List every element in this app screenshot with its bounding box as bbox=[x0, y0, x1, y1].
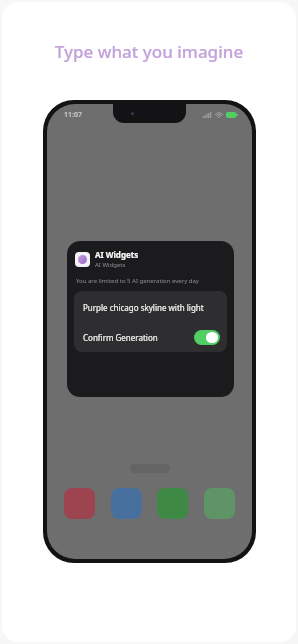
button[interactable]: Blue app bbox=[111, 488, 142, 519]
button[interactable]: Green app bbox=[157, 488, 188, 519]
staticText: AI Widgets bbox=[95, 261, 126, 269]
staticText: You are limited to 5 AI generation every… bbox=[76, 277, 199, 285]
staticText: 11:07 bbox=[64, 110, 82, 120]
staticText: AI Widgets bbox=[95, 249, 139, 260]
button[interactable]: Red app bbox=[64, 488, 95, 519]
button[interactable]: Confirm Generation bbox=[74, 323, 227, 352]
staticText: Type what you imagine bbox=[0, 40, 298, 63]
button[interactable]: WhatsApp bbox=[204, 488, 235, 519]
button[interactable]: Purple chicago skyline with light bbox=[74, 291, 227, 323]
staticText: Purple chicago skyline with light bbox=[83, 302, 204, 313]
staticText: Confirm Generation bbox=[83, 332, 158, 343]
